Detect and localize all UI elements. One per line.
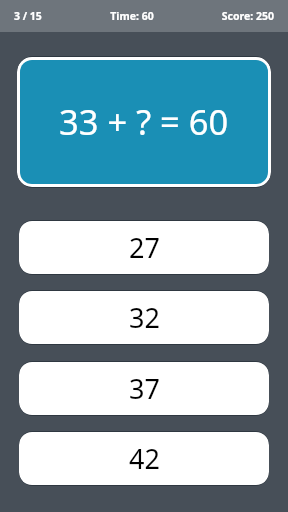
staticText: 42	[129, 440, 160, 477]
button[interactable]: 37	[19, 361, 269, 416]
staticText: 33 + ? = 60	[59, 98, 229, 145]
staticText: 32	[129, 299, 160, 336]
staticText: Score: 250	[221, 9, 274, 23]
staticText: 27	[129, 229, 160, 266]
staticText: Time: 60	[110, 9, 154, 23]
staticText: 3 / 15	[14, 9, 42, 23]
button[interactable]: 32	[19, 290, 269, 345]
button[interactable]: 27	[19, 220, 269, 275]
staticText: 37	[129, 370, 160, 407]
button[interactable]: 42	[19, 431, 269, 486]
